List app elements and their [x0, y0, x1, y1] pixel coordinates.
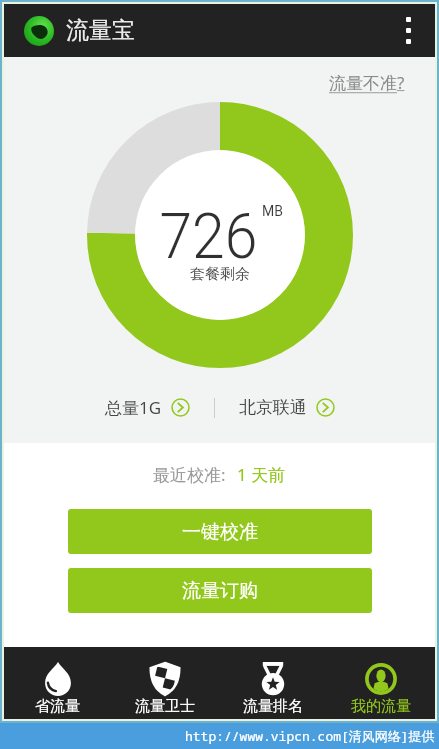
staticText: 726 — [159, 200, 258, 274]
staticText: 流量订购 — [182, 579, 258, 603]
button[interactable]: 流量排名 — [219, 647, 327, 719]
button[interactable]: 北京联通 — [239, 397, 335, 418]
staticText: 一键校准 — [182, 520, 258, 544]
staticText: http://www.vipcn.com[清风网络]提供 — [185, 727, 435, 745]
staticText: 1 天前 — [237, 463, 286, 486]
staticText: 北京联通 — [239, 397, 307, 418]
staticText: MB — [262, 203, 283, 219]
button[interactable]: 我的流量 — [327, 647, 435, 719]
staticText: 我的流量 — [351, 697, 411, 716]
staticText: 套餐剩余 — [190, 265, 250, 284]
staticText: 最近校准: — [153, 463, 230, 486]
button[interactable]: 流量卫士 — [111, 647, 219, 719]
staticText: 总量1G — [105, 396, 162, 419]
staticText: 流量排名 — [243, 697, 303, 716]
staticText: 流量卫士 — [135, 697, 195, 716]
button[interactable]: 总量1G — [105, 396, 190, 419]
staticText: 省流量 — [35, 697, 80, 716]
button[interactable] — [382, 11, 435, 50]
button[interactable]: 一键校准 — [68, 509, 372, 554]
button[interactable]: 省流量 — [4, 647, 111, 719]
button[interactable]: 流量不准? — [329, 71, 405, 94]
staticText: 流量宝 — [66, 16, 135, 45]
button[interactable]: 流量订购 — [68, 568, 372, 613]
